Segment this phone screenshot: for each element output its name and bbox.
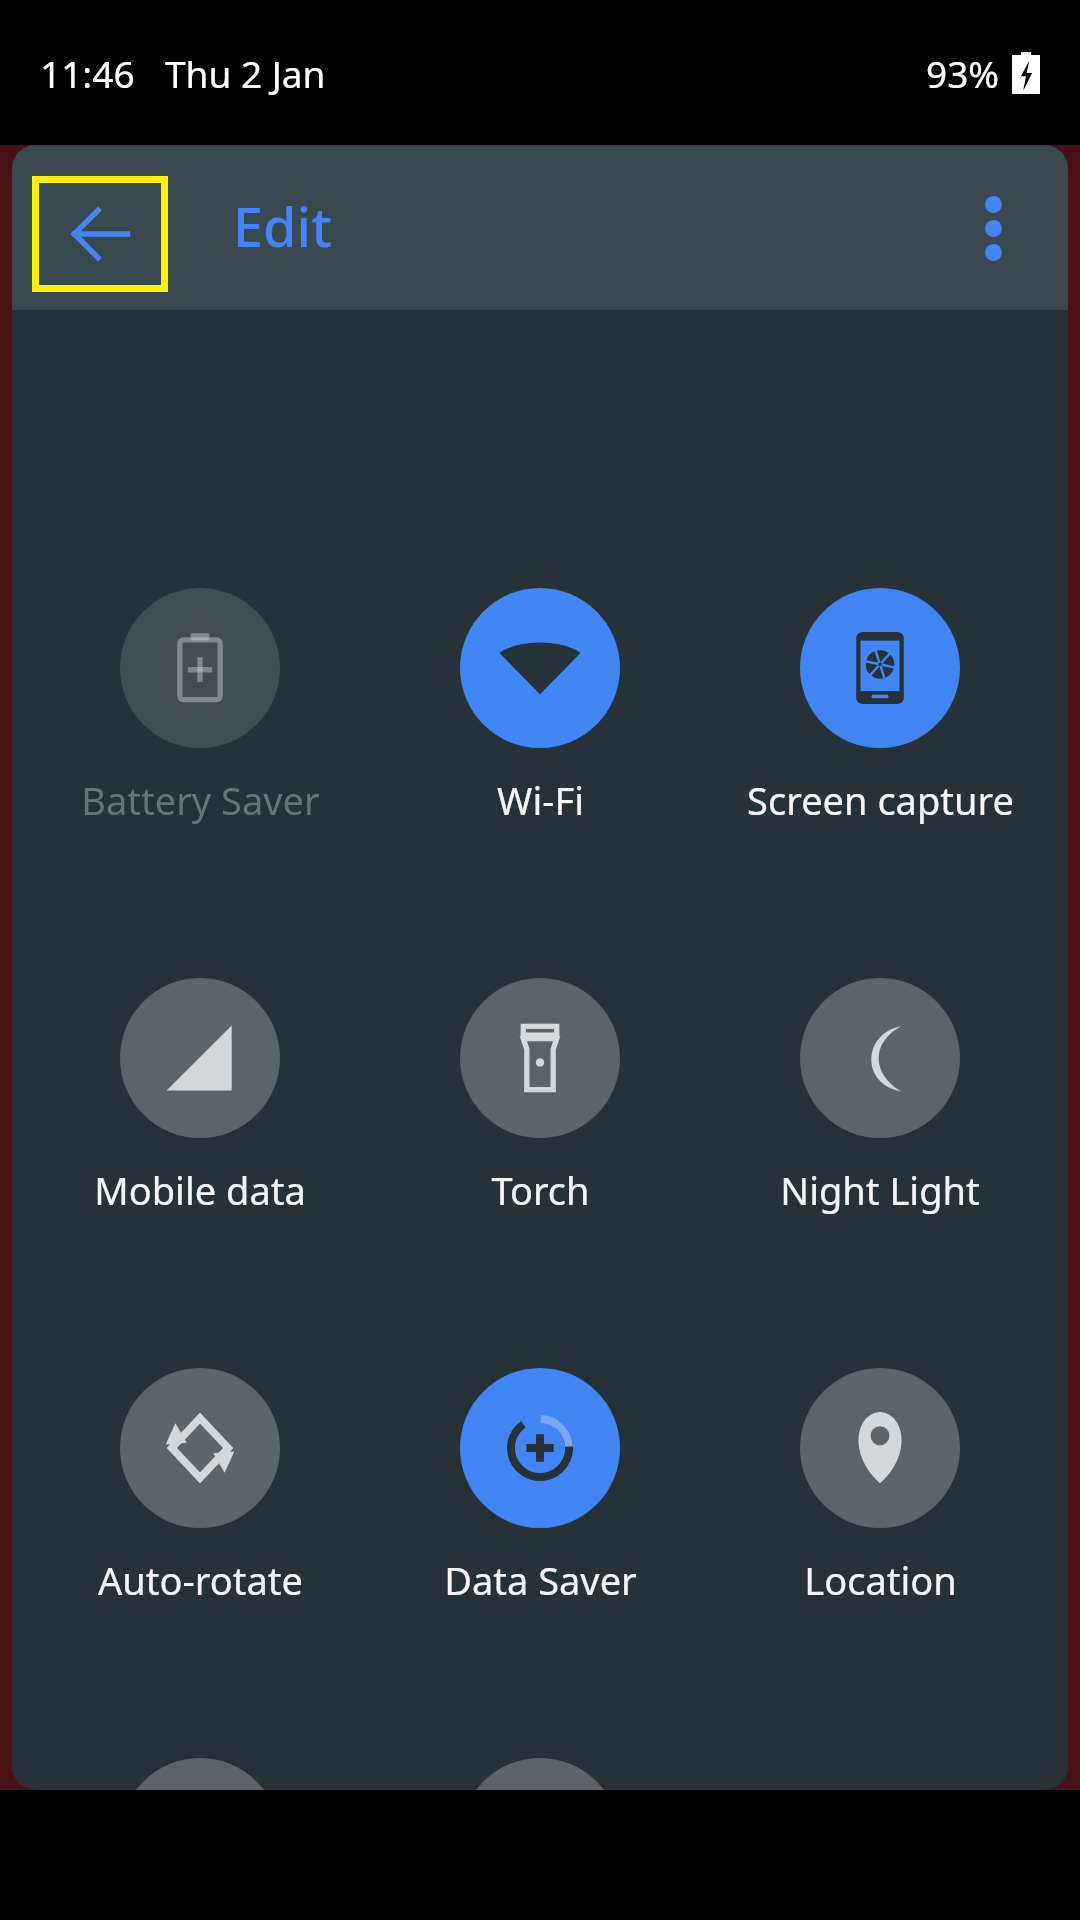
staticText: Auto-rotate [98, 1554, 303, 1606]
staticText: Night Light [780, 1164, 980, 1216]
button[interactable]: Battery Saver [50, 588, 350, 826]
button[interactable]: Location [730, 1368, 1030, 1606]
staticText: Thu 2 Jan [165, 48, 326, 98]
button[interactable]: Wi-Fi [390, 588, 690, 826]
button[interactable]: More options [938, 173, 1048, 283]
button[interactable]: VPN [390, 1758, 690, 1790]
staticText: Screen capture [747, 774, 1014, 826]
staticText: 11:46 [40, 48, 135, 98]
button[interactable]: Data Saver [390, 1368, 690, 1606]
staticText: Edit [233, 189, 332, 263]
button[interactable]: Mobile data [50, 978, 350, 1216]
staticText: Location [804, 1554, 957, 1606]
staticText: Wi-Fi [497, 774, 584, 826]
button[interactable]: Screen capture [730, 588, 1030, 826]
button[interactable]: Back [39, 183, 161, 285]
button[interactable]: Night Light [730, 978, 1030, 1216]
button[interactable]: Bluetooth [50, 1758, 350, 1790]
staticText: Battery Saver [81, 774, 320, 826]
staticText: 93% [926, 48, 1000, 98]
button[interactable]: Torch [390, 978, 690, 1216]
button[interactable]: Auto-rotate [50, 1368, 350, 1606]
staticText: Torch [491, 1164, 590, 1216]
staticText: Mobile data [94, 1164, 306, 1216]
staticText: Data Saver [444, 1554, 637, 1606]
